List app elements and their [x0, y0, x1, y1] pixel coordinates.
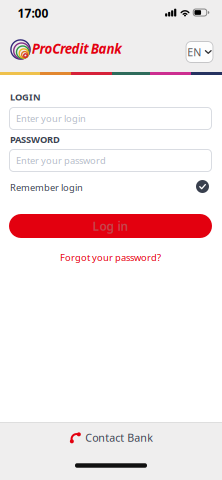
staticText: Forgot your password? [60, 251, 161, 264]
button[interactable]: Log in [9, 214, 212, 238]
staticText: ProCredit Bank [32, 40, 122, 57]
staticText: Enter your password [16, 154, 106, 167]
staticText: Contact Bank [85, 430, 153, 445]
button[interactable]: Remember login [9, 180, 212, 193]
staticText: PASSWORD [10, 133, 60, 146]
button[interactable]: Language: English [185, 41, 213, 63]
staticText: Enter your login [16, 112, 86, 125]
staticText: EN [187, 45, 201, 59]
staticText: Log in [92, 218, 128, 234]
staticText: 17:00 [17, 5, 48, 21]
button[interactable]: Contact Bank [69, 430, 153, 445]
staticText: LOGIN [10, 91, 41, 103]
staticText: Remember login [10, 181, 83, 194]
button[interactable]: Forgot your password? [60, 251, 161, 264]
